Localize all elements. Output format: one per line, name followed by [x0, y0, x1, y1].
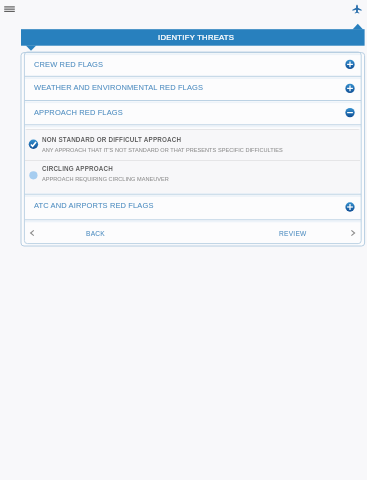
staticText: CREW RED FLAGS	[34, 60, 104, 68]
staticText: IDENTIFY THREATS	[158, 33, 235, 42]
button[interactable]: REVIEW	[194, 220, 363, 245]
button[interactable]: CIRCLING APPROACH	[25, 160, 360, 192]
staticText: BACK	[86, 230, 105, 237]
button[interactable]: Expand weather red flags	[24, 76, 361, 100]
staticText: REVIEW	[279, 230, 307, 237]
staticText: CIRCLING APPROACH	[42, 165, 114, 172]
staticText: ANY APPROACH THAT IT'S NOT STANDARD OR T…	[42, 147, 283, 153]
button[interactable]: Collapse approach red flags	[24, 101, 361, 125]
staticText: ATC AND AIRPORTS RED FLAGS	[34, 201, 154, 209]
button[interactable]: NON STANDARD OR DIFFICULT APPROACH	[25, 129, 360, 160]
button[interactable]: BACK	[24, 220, 194, 245]
staticText: APPROACH REQUIRING CIRCLING MANEUVER	[42, 176, 169, 182]
staticText: NON STANDARD OR DIFFICULT APPROACH	[42, 136, 182, 143]
button[interactable]: Expand ATC red flags	[24, 194, 361, 220]
button[interactable]: Expand crew red flags	[24, 53, 361, 77]
staticText: APPROACH RED FLAGS	[34, 108, 123, 116]
button[interactable]: Open navigation menu	[0, 0, 20, 18]
staticText: WEATHER AND ENVIRONMENTAL RED FLAGS	[34, 83, 204, 91]
button[interactable]: Flight	[347, 0, 367, 20]
